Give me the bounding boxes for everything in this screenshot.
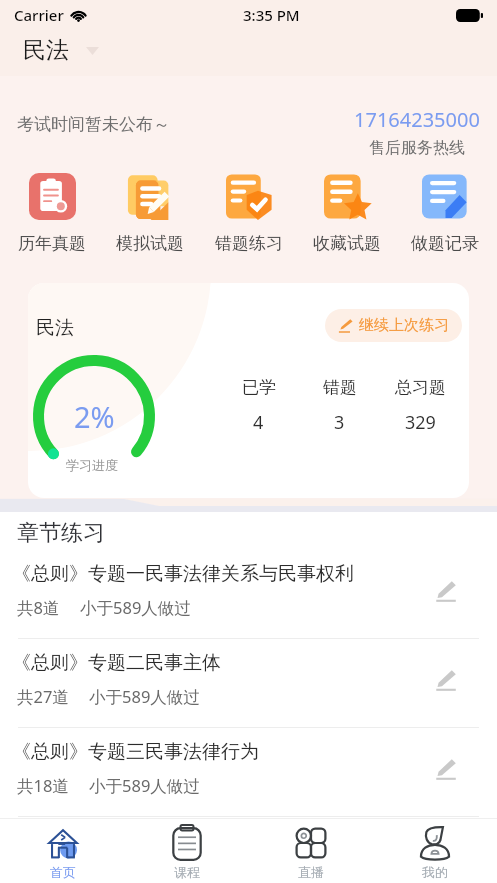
button[interactable]: 直播 — [249, 819, 373, 883]
button[interactable]: 17164235000 — [354, 106, 480, 158]
staticText: 民法 — [23, 36, 69, 65]
staticText: 首页 — [50, 864, 76, 880]
button[interactable]: 收藏试题 — [306, 168, 388, 259]
button[interactable]: 继续上次练习 — [325, 309, 462, 342]
staticText: 考试时间暂未公布～ — [17, 114, 170, 135]
staticText: 直播 — [298, 864, 324, 880]
staticText: 329 — [405, 410, 436, 435]
staticText: 售后服务热线 — [369, 138, 465, 158]
staticText: 模拟试题 — [116, 233, 184, 254]
button[interactable]: 我的 — [373, 819, 497, 883]
staticText: 《总则》专题二民事主体 — [12, 651, 221, 675]
staticText: 共8道 — [17, 596, 60, 619]
button[interactable]: 做题记录 — [404, 168, 486, 259]
button[interactable]: 《总则》专题一民事法律关系与民事权利 — [0, 550, 497, 639]
staticText: 学习进度 — [66, 457, 118, 473]
staticText: 3:35 PM — [243, 5, 300, 25]
staticText: 章节练习 — [17, 519, 105, 547]
staticText: 错题 — [323, 377, 357, 398]
staticText: 《总则》专题一民事法律关系与民事权利 — [12, 562, 354, 586]
staticText: 《总则》专题三民事法律行为 — [12, 740, 259, 764]
staticText: 继续上次练习 — [359, 316, 449, 335]
staticText: 3 — [334, 410, 345, 435]
staticText: 小于589人做过 — [80, 596, 191, 619]
button[interactable]: 模拟试题 — [109, 168, 191, 259]
button[interactable]: 编辑 — [435, 758, 456, 779]
staticText: 做题记录 — [411, 233, 479, 254]
staticText: 小于589人做过 — [89, 685, 200, 708]
staticText: 我的 — [422, 864, 448, 880]
staticText: 2% — [74, 397, 115, 436]
button[interactable]: 课程 — [125, 819, 249, 883]
staticText: 民法 — [36, 316, 74, 340]
staticText: 小于589人做过 — [89, 774, 200, 797]
button[interactable]: 首页 — [0, 819, 125, 883]
button[interactable]: 历年真题 — [11, 168, 93, 259]
staticText: Carrier — [14, 5, 64, 25]
staticText: 总习题 — [395, 377, 446, 398]
staticText: 共18道 — [17, 774, 69, 797]
button[interactable]: 错题练习 — [208, 168, 290, 259]
staticText: 4 — [253, 410, 264, 435]
button[interactable]: 编辑 — [435, 669, 456, 690]
button[interactable]: 编辑 — [435, 580, 456, 601]
staticText: 错题练习 — [215, 233, 283, 254]
button[interactable]: 民法 — [23, 36, 99, 65]
button[interactable]: 《总则》专题三民事法律行为 — [0, 728, 497, 817]
staticText: 17164235000 — [354, 106, 480, 133]
staticText: 共27道 — [17, 685, 69, 708]
staticText: 收藏试题 — [313, 233, 381, 254]
staticText: 历年真题 — [18, 233, 86, 254]
button[interactable]: 《总则》专题二民事主体 — [0, 639, 497, 728]
staticText: 已学 — [242, 377, 276, 398]
staticText: 课程 — [174, 864, 200, 880]
